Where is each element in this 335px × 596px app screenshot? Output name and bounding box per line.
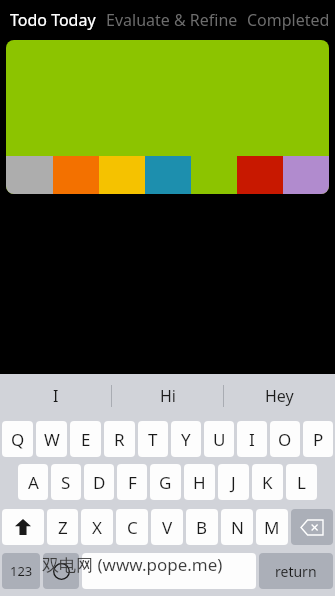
- staticText: S: [61, 471, 71, 494]
- staticText: Completed: [247, 9, 330, 31]
- button[interactable]: Y: [171, 421, 201, 457]
- button[interactable]: H: [184, 464, 215, 500]
- button[interactable]: S: [51, 464, 81, 500]
- button[interactable]: E: [70, 421, 101, 457]
- staticText: N: [231, 516, 244, 539]
- button[interactable]: Colour swatch: [283, 156, 329, 194]
- staticText: D: [93, 471, 106, 494]
- staticText: 123: [10, 562, 33, 580]
- button[interactable]: D: [84, 464, 114, 500]
- staticText: A: [28, 471, 39, 494]
- button[interactable]: W: [36, 421, 67, 457]
- staticText: L: [297, 471, 306, 494]
- staticText: 双电网 (www.pope.me): [42, 553, 223, 576]
- button[interactable]: Shift: [2, 509, 44, 545]
- button[interactable]: Evaluate & Refine: [106, 9, 238, 31]
- staticText: H: [193, 471, 206, 494]
- button[interactable]: Q: [2, 421, 33, 457]
- button[interactable]: M: [256, 509, 288, 545]
- staticText: T: [148, 428, 158, 451]
- button[interactable]: I: [237, 421, 267, 457]
- button[interactable]: Completed: [247, 9, 330, 31]
- staticText: F: [128, 471, 137, 494]
- button[interactable]: Z: [47, 509, 78, 545]
- button[interactable]: Colour swatch: [6, 40, 329, 194]
- button[interactable]: Backspace: [291, 509, 333, 545]
- staticText: E: [81, 428, 91, 451]
- button[interactable]: T: [138, 421, 168, 457]
- staticText: Todo Today: [10, 9, 96, 31]
- button[interactable]: Space: [82, 553, 256, 589]
- staticText: Z: [58, 516, 68, 539]
- staticText: O: [278, 428, 292, 451]
- staticText: X: [92, 516, 102, 539]
- button[interactable]: A: [18, 464, 48, 500]
- button[interactable]: L: [286, 464, 317, 500]
- staticText: return: [275, 562, 317, 581]
- staticText: I: [249, 428, 255, 451]
- button[interactable]: K: [252, 464, 283, 500]
- button[interactable]: 123: [2, 553, 40, 589]
- button[interactable]: U: [204, 421, 234, 457]
- staticText: M: [264, 516, 280, 539]
- button[interactable]: R: [104, 421, 135, 457]
- staticText: U: [213, 428, 226, 451]
- button[interactable]: I: [0, 374, 111, 418]
- button[interactable]: X: [81, 509, 113, 545]
- staticText: R: [114, 428, 125, 451]
- button[interactable]: O: [270, 421, 300, 457]
- staticText: Hey: [265, 385, 294, 407]
- button[interactable]: B: [186, 509, 218, 545]
- button[interactable]: G: [150, 464, 181, 500]
- staticText: J: [231, 471, 236, 494]
- staticText: B: [196, 516, 208, 539]
- button[interactable]: Hey: [224, 374, 335, 418]
- staticText: Hi: [160, 385, 176, 407]
- button[interactable]: F: [117, 464, 147, 500]
- staticText: P: [313, 428, 324, 451]
- button[interactable]: P: [303, 421, 333, 457]
- staticText: Q: [11, 428, 25, 451]
- staticText: Y: [181, 428, 191, 451]
- button[interactable]: Todo Today: [10, 9, 96, 31]
- staticText: K: [262, 471, 273, 494]
- staticText: C: [127, 516, 138, 539]
- button[interactable]: J: [218, 464, 249, 500]
- staticText: Evaluate & Refine: [106, 9, 238, 31]
- button[interactable]: Hi: [112, 374, 223, 418]
- staticText: V: [162, 516, 173, 539]
- button[interactable]: Colour swatch: [6, 156, 53, 194]
- staticText: G: [159, 471, 172, 494]
- button[interactable]: N: [221, 509, 253, 545]
- staticText: W: [44, 428, 60, 451]
- button[interactable]: V: [151, 509, 183, 545]
- button[interactable]: C: [116, 509, 148, 545]
- button[interactable]: return: [259, 553, 333, 589]
- button[interactable]: Switch keyboard: [43, 553, 79, 589]
- staticText: I: [53, 385, 59, 407]
